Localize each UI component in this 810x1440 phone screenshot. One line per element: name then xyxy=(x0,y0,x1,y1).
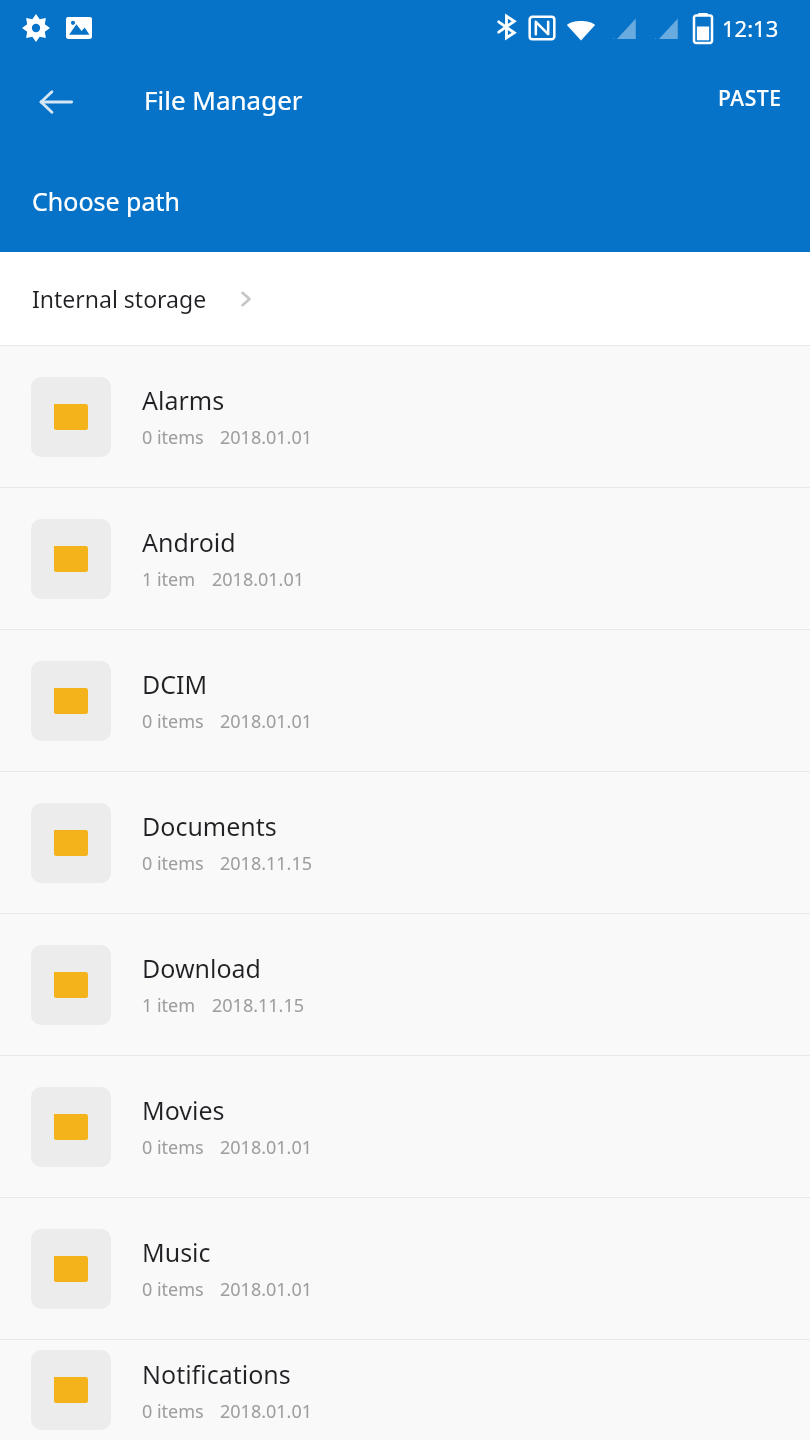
staticText: Choose path xyxy=(32,184,180,218)
staticText: 2018.01.01 xyxy=(220,709,313,734)
button[interactable]: DCIM xyxy=(0,630,810,771)
button[interactable]: PASTE xyxy=(702,72,798,125)
staticText: 2018.01.01 xyxy=(220,1399,313,1424)
staticText: 0 items xyxy=(142,851,204,876)
staticText: 1 item xyxy=(142,993,196,1018)
staticText: Music xyxy=(142,1235,211,1269)
button[interactable]: Documents xyxy=(0,772,810,913)
button[interactable]: Back xyxy=(22,68,90,136)
button[interactable]: Music xyxy=(0,1198,810,1339)
staticText: Alarms xyxy=(142,383,225,417)
staticText: File Manager xyxy=(144,82,303,117)
staticText: 2018.01.01 xyxy=(220,1277,313,1302)
staticText: Movies xyxy=(142,1093,225,1127)
staticText: Internal storage xyxy=(32,283,207,314)
button[interactable]: Internal storage xyxy=(0,252,810,345)
staticText: 1 item xyxy=(142,567,196,592)
staticText: 2018.01.01 xyxy=(220,1135,313,1160)
staticText: 2018.01.01 xyxy=(212,567,305,592)
staticText: PASTE xyxy=(718,84,782,113)
button[interactable]: Alarms xyxy=(0,346,810,487)
staticText: DCIM xyxy=(142,667,208,701)
staticText: 2018.11.15 xyxy=(220,851,313,876)
staticText: Download xyxy=(142,951,261,985)
staticText: 2018.11.15 xyxy=(212,993,305,1018)
staticText: Android xyxy=(142,525,236,559)
button[interactable]: Movies xyxy=(0,1056,810,1197)
staticText: 0 items xyxy=(142,1399,204,1424)
button[interactable]: Android xyxy=(0,488,810,629)
button[interactable]: Notifications xyxy=(0,1340,810,1440)
staticText: 0 items xyxy=(142,425,204,450)
button[interactable]: Download xyxy=(0,914,810,1055)
staticText: Notifications xyxy=(142,1357,291,1391)
staticText: 0 items xyxy=(142,709,204,734)
staticText: Documents xyxy=(142,809,277,843)
staticText: 0 items xyxy=(142,1277,204,1302)
staticText: 0 items xyxy=(142,1135,204,1160)
staticText: 12:13 xyxy=(722,13,779,43)
staticText: 2018.01.01 xyxy=(220,425,313,450)
